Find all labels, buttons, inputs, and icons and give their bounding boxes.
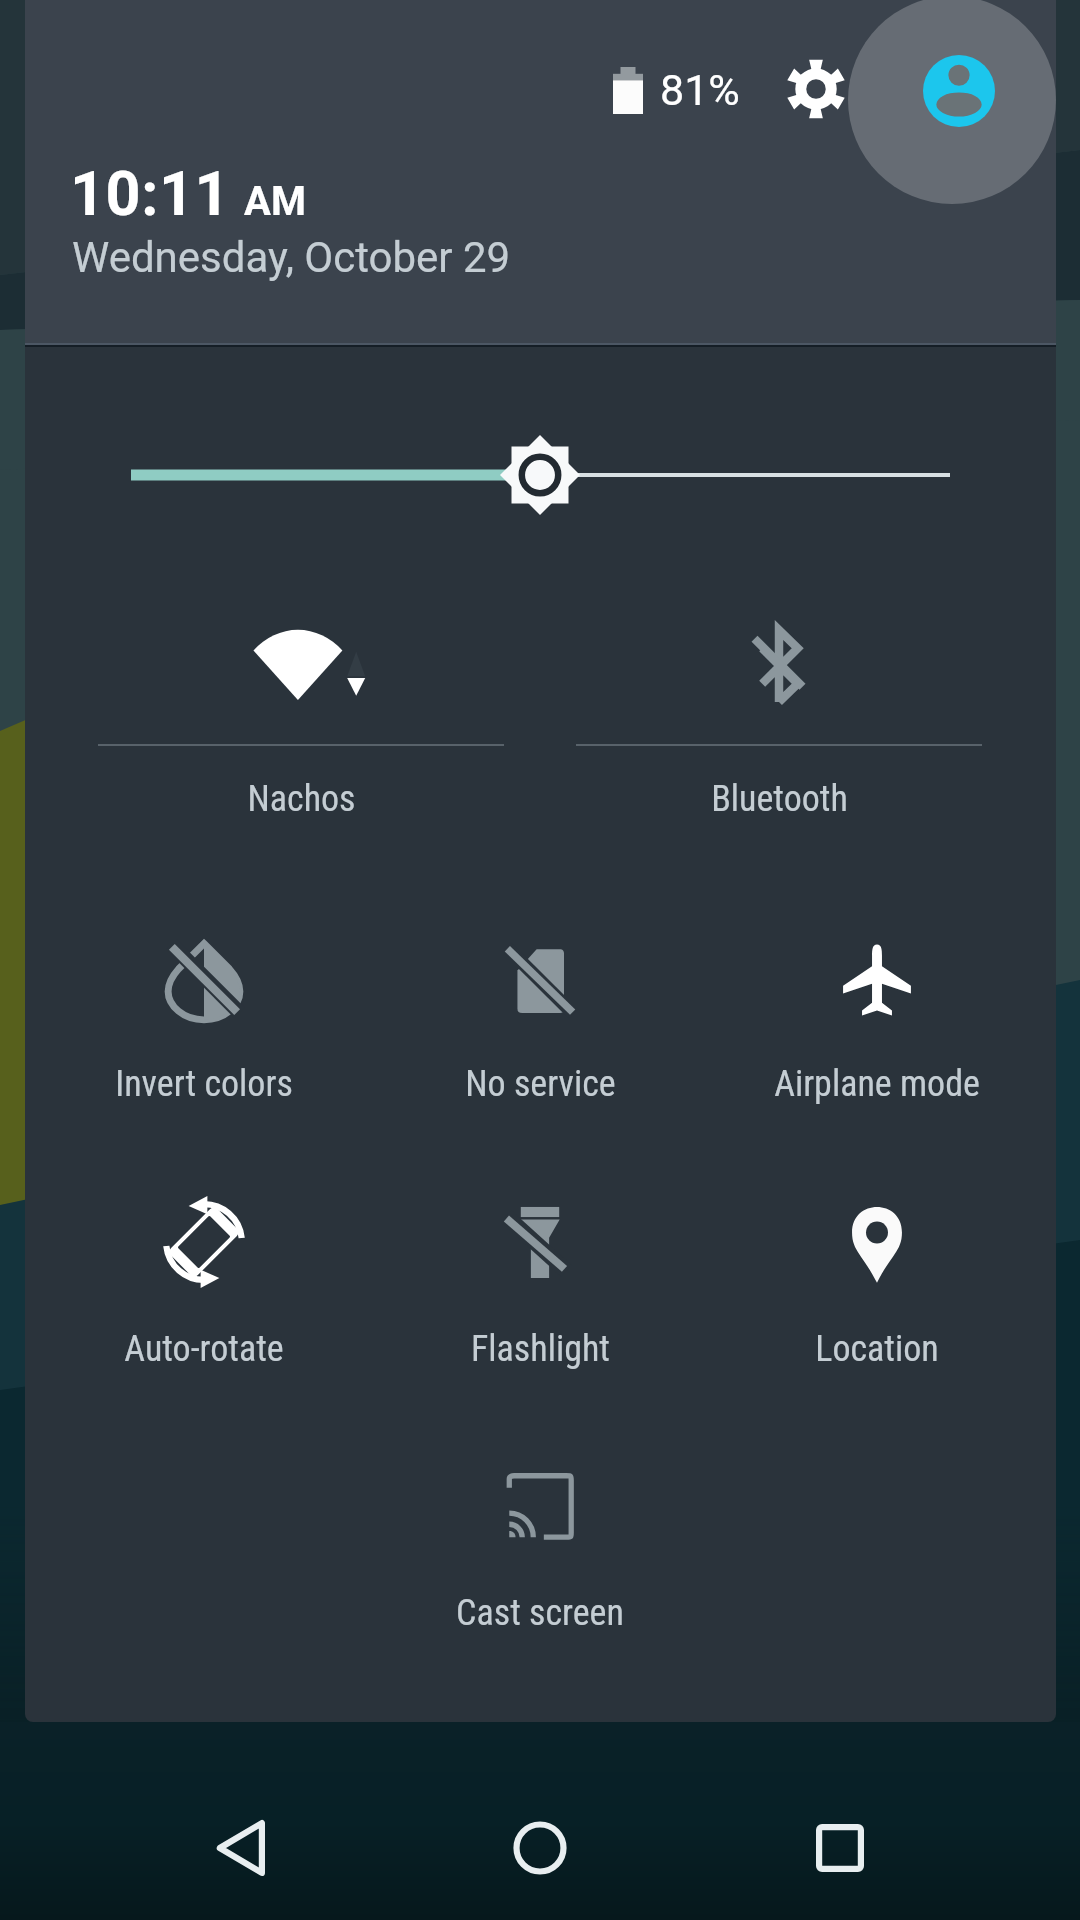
staticText: Bluetooth bbox=[711, 778, 848, 820]
staticText: Cast screen bbox=[456, 1592, 624, 1634]
staticText: Flashlight bbox=[471, 1328, 610, 1370]
button[interactable]: Nachos bbox=[61, 600, 541, 830]
button[interactable]: Home bbox=[480, 1788, 600, 1908]
button[interactable]: Cast screen bbox=[375, 1438, 705, 1648]
button[interactable]: Settings bbox=[770, 43, 862, 135]
button[interactable]: Airplane mode bbox=[712, 912, 1042, 1119]
button[interactable]: No service bbox=[375, 912, 705, 1119]
staticText: No service bbox=[465, 1063, 616, 1105]
staticText: Auto-rotate bbox=[124, 1328, 284, 1370]
staticText: Wednesday, October 29 bbox=[72, 233, 511, 282]
staticText: AM bbox=[244, 178, 306, 225]
button[interactable]: Battery 81 percent bbox=[588, 44, 752, 136]
button[interactable]: Back bbox=[180, 1788, 300, 1908]
button[interactable]: Location bbox=[712, 1174, 1042, 1384]
button[interactable]: Auto-rotate bbox=[39, 1174, 369, 1384]
staticText: 81% bbox=[660, 65, 740, 115]
staticText: 10:11 bbox=[70, 158, 231, 229]
staticText: Location bbox=[815, 1328, 939, 1370]
staticText: Airplane mode bbox=[774, 1063, 980, 1105]
button[interactable]: Bluetooth bbox=[539, 600, 1019, 830]
button[interactable]: Flashlight bbox=[375, 1174, 705, 1384]
button[interactable]: Brightness bbox=[106, 415, 974, 535]
button[interactable]: Invert colors bbox=[39, 912, 369, 1119]
staticText: Nachos bbox=[247, 778, 356, 820]
button[interactable]: User profile bbox=[913, 45, 1005, 137]
staticText: Invert colors bbox=[115, 1063, 293, 1105]
button[interactable]: Recents bbox=[780, 1788, 900, 1908]
